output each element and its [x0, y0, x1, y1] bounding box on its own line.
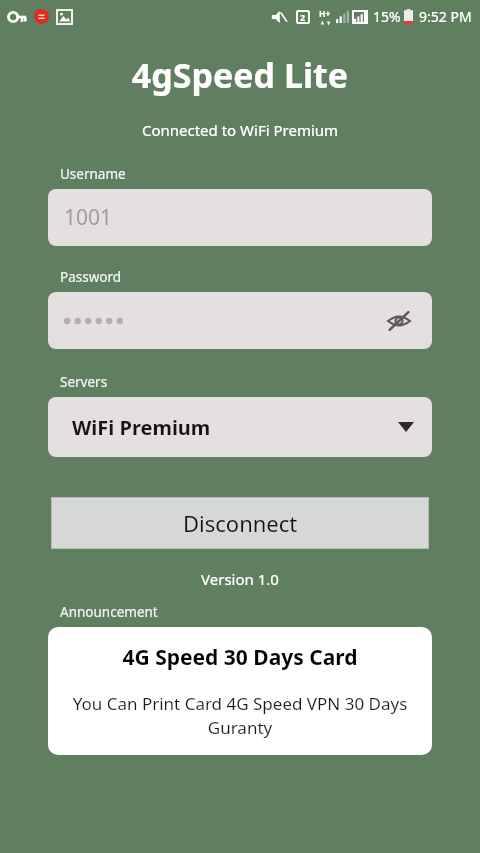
button[interactable]: 1001 [48, 189, 432, 246]
staticText: Username [60, 165, 126, 183]
staticText: 1001 [64, 203, 113, 232]
staticText: Announcement [60, 603, 158, 621]
staticText: 15% [373, 7, 401, 26]
staticText: Disconnect [183, 508, 298, 538]
staticText: Password [60, 268, 122, 286]
staticText: 9:52 PM [419, 7, 472, 26]
staticText: Version 1.0 [0, 569, 480, 589]
staticText: H+ [319, 8, 331, 20]
staticText: 4G Speed 30 Days Card [60, 643, 420, 672]
staticText: WiFi Premium [72, 414, 211, 441]
staticText: Connected to WiFi Premium [0, 120, 480, 140]
staticText: Servers [60, 373, 108, 391]
button[interactable]: 4G Speed 30 Days Card [48, 627, 432, 755]
staticText: 4gSpeed Lite [0, 52, 480, 98]
staticText: 2 [300, 11, 306, 23]
button[interactable]: Show password [48, 292, 432, 349]
button[interactable]: Disconnect [51, 497, 429, 549]
button[interactable]: Show password [382, 304, 416, 338]
button[interactable]: WiFi Premium [48, 397, 432, 457]
staticText: You Can Print Card 4G Speed VPN 30 Days … [60, 692, 420, 739]
